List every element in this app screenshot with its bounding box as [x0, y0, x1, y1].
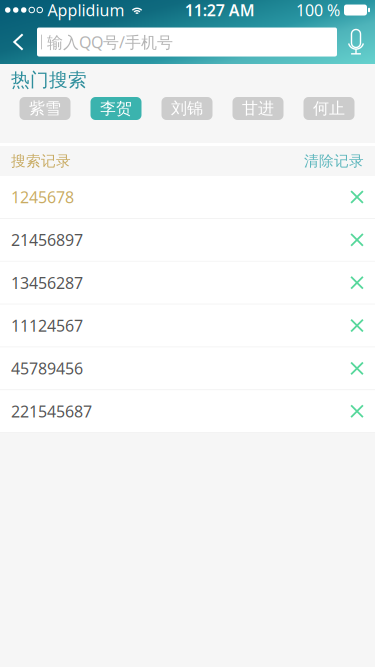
button[interactable]: Back: [0, 20, 37, 64]
staticText: 21456897: [11, 229, 83, 250]
button[interactable]: 何止: [303, 97, 354, 120]
button[interactable]: 221545687: [0, 390, 375, 433]
button[interactable]: Voice search: [337, 20, 375, 64]
button[interactable]: 13456287: [0, 262, 375, 305]
staticText: 100 %: [296, 0, 340, 21]
staticText: 11:27 AM: [185, 0, 255, 21]
button[interactable]: 1245678: [0, 176, 375, 219]
button[interactable]: 21456897: [0, 219, 375, 262]
staticText: 1245678: [11, 186, 74, 208]
staticText: 输入QQ号/手机号: [47, 31, 173, 53]
button[interactable]: 甘进: [232, 97, 283, 120]
staticText: 45789456: [11, 358, 83, 379]
button[interactable]: 紫雪: [19, 97, 70, 120]
staticText: 221545687: [11, 401, 92, 422]
staticText: 11124567: [11, 315, 83, 336]
staticText: 清除记录: [304, 152, 364, 170]
staticText: 热门搜索: [11, 68, 87, 91]
staticText: 何止: [313, 99, 345, 118]
staticText: Applidium: [47, 0, 124, 21]
staticText: 搜索记录: [11, 152, 71, 170]
button[interactable]: 清除记录: [304, 152, 364, 170]
staticText: 紫雪: [29, 99, 61, 118]
staticText: 刘锦: [171, 99, 203, 118]
button[interactable]: 刘锦: [161, 97, 212, 120]
staticText: 李贺: [100, 99, 132, 118]
staticText: 甘进: [242, 99, 274, 118]
button[interactable]: 45789456: [0, 347, 375, 390]
button[interactable]: 李贺: [90, 97, 141, 120]
staticText: 13456287: [11, 272, 83, 293]
button[interactable]: 11124567: [0, 305, 375, 347]
